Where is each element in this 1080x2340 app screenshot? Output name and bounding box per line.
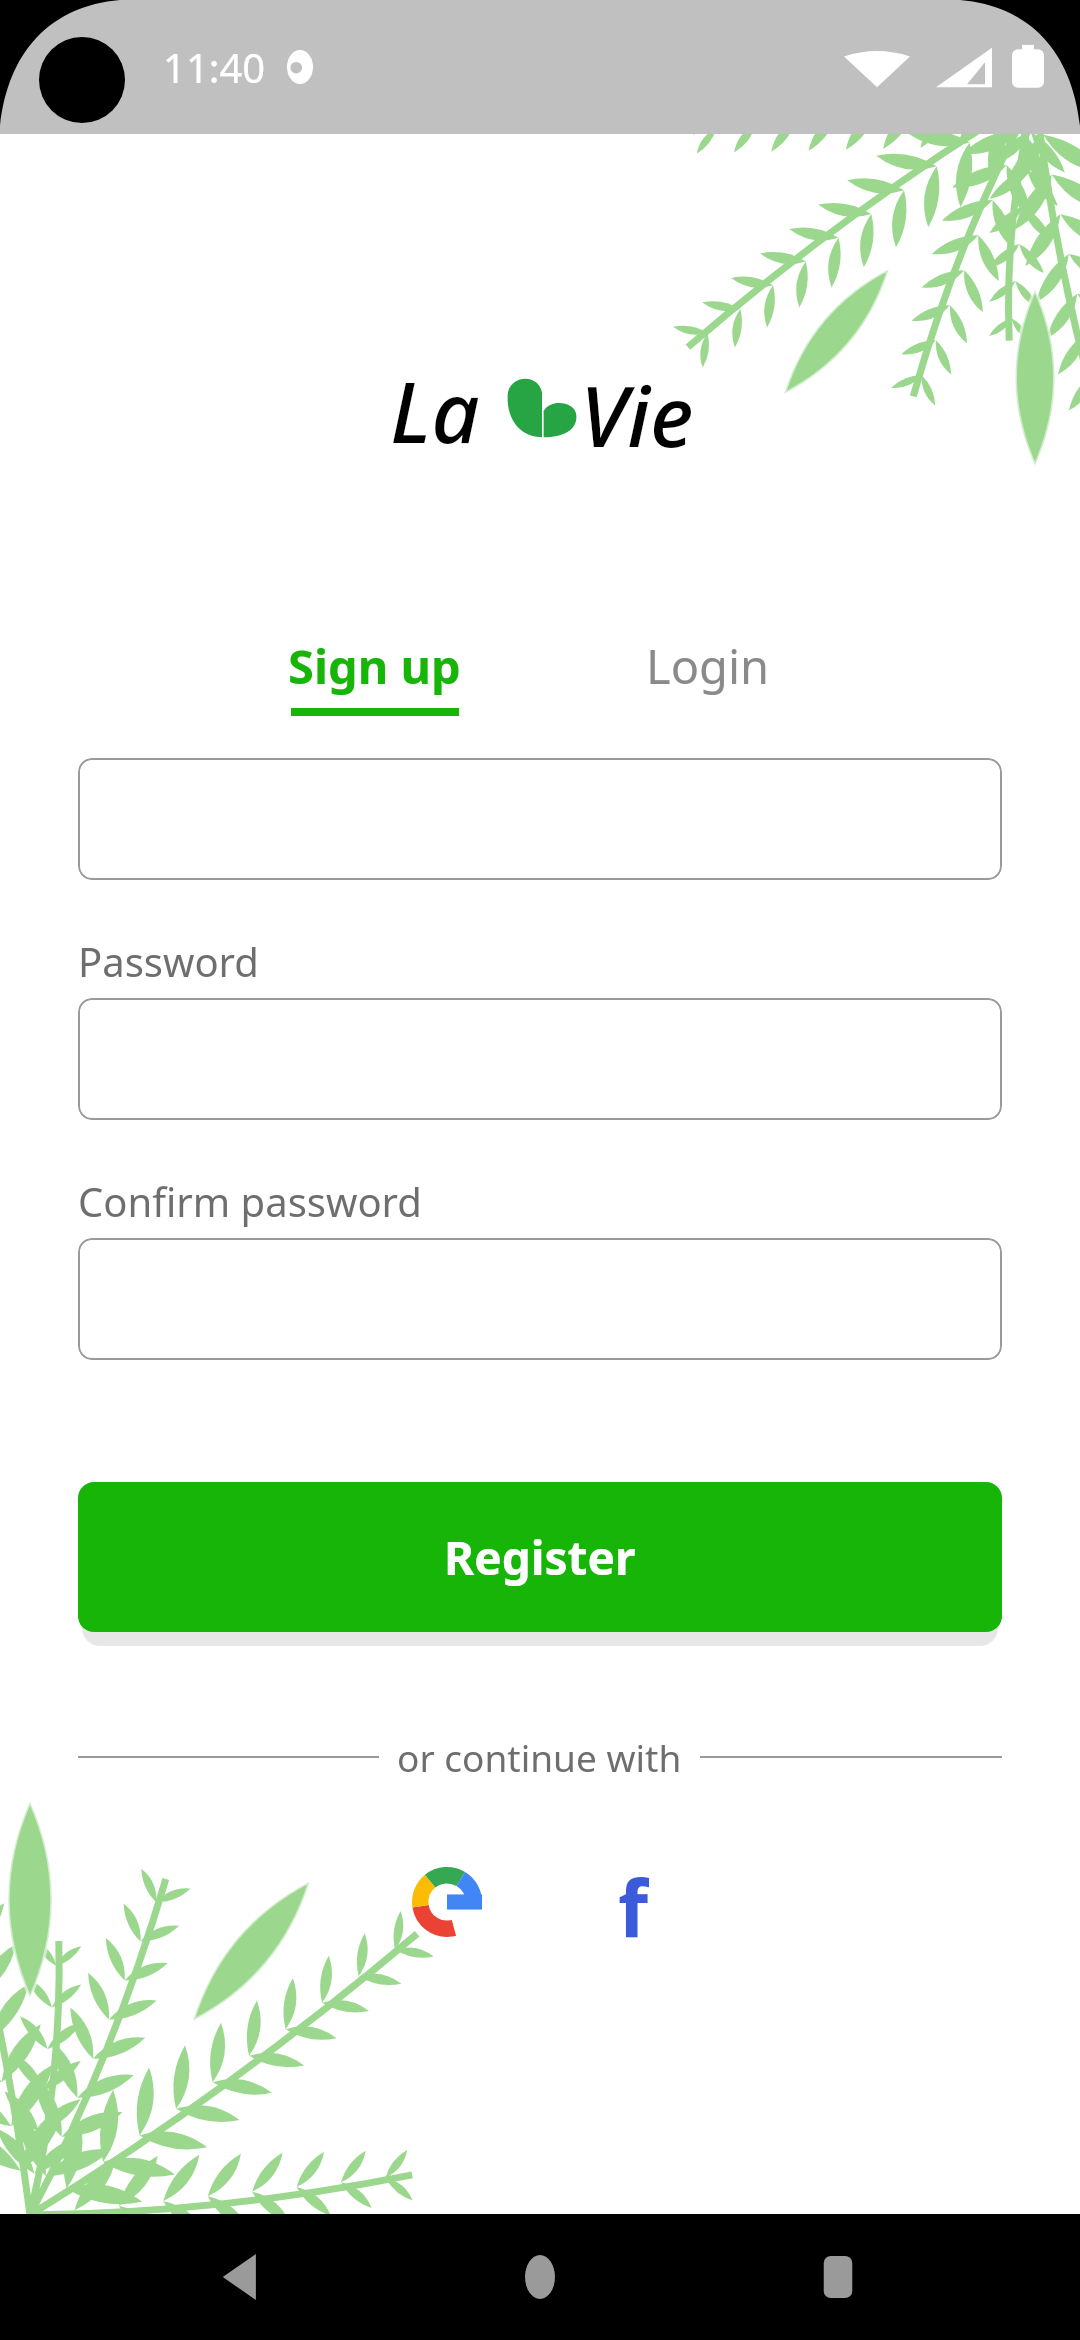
button[interactable]: Login (646, 634, 770, 698)
staticText: Login (646, 634, 770, 698)
button[interactable]: Sign up (288, 634, 461, 716)
button[interactable] (78, 998, 1002, 1120)
button[interactable]: Register (78, 1482, 1002, 1632)
staticText: Confirm password (78, 1174, 422, 1228)
staticText: or continue with (397, 1732, 682, 1782)
button[interactable]: Continue with Facebook (585, 1854, 681, 1950)
staticText: La (390, 353, 480, 463)
button[interactable]: Recent apps (783, 2222, 893, 2332)
staticText: 11:40 (163, 40, 266, 94)
button[interactable]: Continue with Google (399, 1854, 495, 1950)
staticText: f (618, 1854, 649, 1950)
staticText: Password (78, 934, 259, 988)
button[interactable]: Home (485, 2222, 595, 2332)
staticText: Vie (580, 357, 694, 467)
button[interactable] (78, 758, 1002, 880)
staticText: Sign up (288, 634, 461, 698)
button[interactable] (78, 1238, 1002, 1360)
staticText: Register (444, 1526, 636, 1589)
button[interactable]: Back (188, 2222, 298, 2332)
